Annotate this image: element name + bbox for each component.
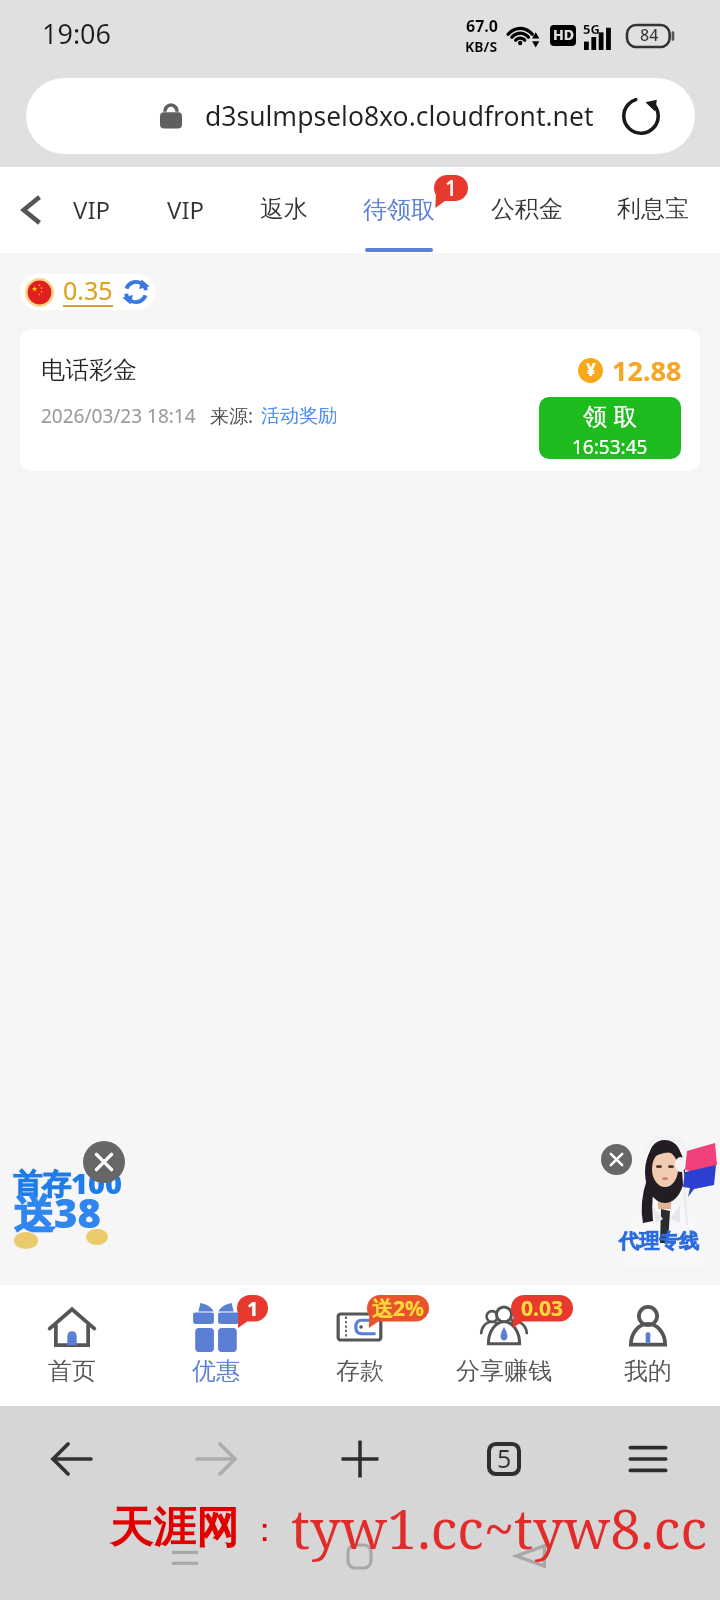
staticText: 5 <box>497 1441 512 1475</box>
button[interactable]: Reload <box>618 93 664 139</box>
button[interactable]: 首页 <box>0 1283 144 1404</box>
button[interactable]: 电话彩金 <box>20 329 700 471</box>
staticText: 天涯网 <box>110 1501 239 1555</box>
staticText: 电话彩金 <box>41 355 137 385</box>
staticText: ¥ <box>586 358 596 381</box>
staticText: 待领取 <box>363 195 435 225</box>
staticText: tyw1.cc~tyw8.cc <box>291 1491 707 1565</box>
staticText: 16:53:45 <box>572 434 648 459</box>
button[interactable]: 首存100 <box>0 1137 136 1265</box>
button[interactable]: 我的 <box>576 1283 720 1404</box>
staticText: 12.88 <box>612 352 682 389</box>
button[interactable]: 代理专线 <box>595 1127 720 1267</box>
staticText: d3sulmpselo8xo.cloudfront.net <box>205 98 594 134</box>
staticText: 19:06 <box>42 15 112 52</box>
button[interactable]: d3sulmpselo8xo.cloudfront.net <box>26 78 695 154</box>
staticText: 存款 <box>336 1356 384 1386</box>
staticText: HD <box>553 25 574 44</box>
button[interactable]: 领 取 <box>539 397 681 459</box>
button[interactable]: 0.03 <box>432 1283 576 1404</box>
button[interactable]: Home <box>329 1512 389 1600</box>
staticText: 送2% <box>372 1294 424 1323</box>
button[interactable]: Close ad <box>601 1144 632 1175</box>
staticText: 来源: <box>210 403 254 429</box>
staticText: 我的 <box>624 1356 672 1386</box>
staticText: KB/S <box>465 37 498 56</box>
staticText: 公积金 <box>491 194 563 224</box>
staticText: 代理专线 <box>619 1229 699 1254</box>
staticText: 5G <box>583 20 600 38</box>
staticText: 优惠 <box>192 1356 240 1386</box>
button[interactable]: 利息宝 <box>593 167 713 253</box>
button[interactable]: Back <box>500 1512 560 1600</box>
staticText: 领 取 <box>583 399 638 432</box>
button[interactable]: 待领取 <box>339 167 459 253</box>
button[interactable]: Tabs <box>432 1406 576 1512</box>
staticText: 返水 <box>260 194 308 224</box>
button[interactable]: Close ad <box>83 1141 125 1183</box>
staticText: 1 <box>247 1295 259 1322</box>
button[interactable]: Recents <box>155 1512 215 1600</box>
button[interactable]: 送2% <box>288 1283 432 1404</box>
staticText: 首存100 <box>13 1163 122 1203</box>
button[interactable]: VIP <box>45 167 139 253</box>
staticText: VIP <box>167 193 205 226</box>
staticText: 1 <box>445 174 458 203</box>
staticText: 67.0 <box>466 15 498 37</box>
button[interactable]: Back <box>8 187 54 233</box>
staticText: 利息宝 <box>617 194 689 224</box>
button[interactable]: 公积金 <box>467 167 587 253</box>
staticText: ： <box>239 1505 291 1551</box>
button[interactable]: 返水 <box>232 167 336 253</box>
button[interactable]: Forward <box>144 1406 288 1512</box>
staticText: 分享赚钱 <box>456 1356 552 1386</box>
staticText: 84 <box>640 24 659 46</box>
staticText: 首页 <box>48 1356 96 1386</box>
staticText: 活动奖励 <box>261 404 337 428</box>
button[interactable]: 1 <box>144 1283 288 1404</box>
button[interactable]: Back <box>0 1406 144 1512</box>
button[interactable]: New tab <box>288 1406 432 1512</box>
button[interactable]: Menu <box>576 1406 720 1512</box>
staticText: 0.35 <box>63 274 113 307</box>
staticText: 送38 <box>14 1185 101 1240</box>
staticText: VIP <box>73 193 111 226</box>
staticText: 0.03 <box>521 1294 563 1323</box>
staticText: 2026/03/23 18:14 <box>41 403 196 429</box>
button[interactable]: VIP <box>139 167 233 253</box>
button[interactable]: 0.35 <box>25 274 150 310</box>
